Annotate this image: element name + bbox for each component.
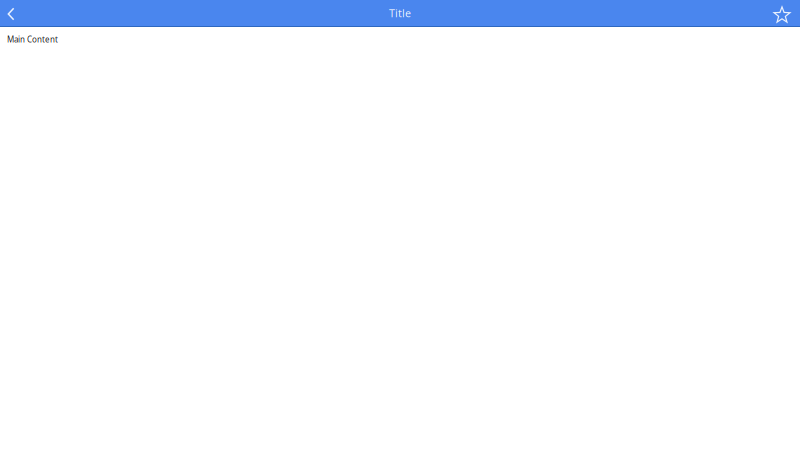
button[interactable]: Back — [0, 0, 22, 26]
button[interactable]: Favorite — [769, 0, 800, 26]
staticText: Main Content — [7, 34, 58, 45]
staticText: Title — [389, 6, 411, 20]
